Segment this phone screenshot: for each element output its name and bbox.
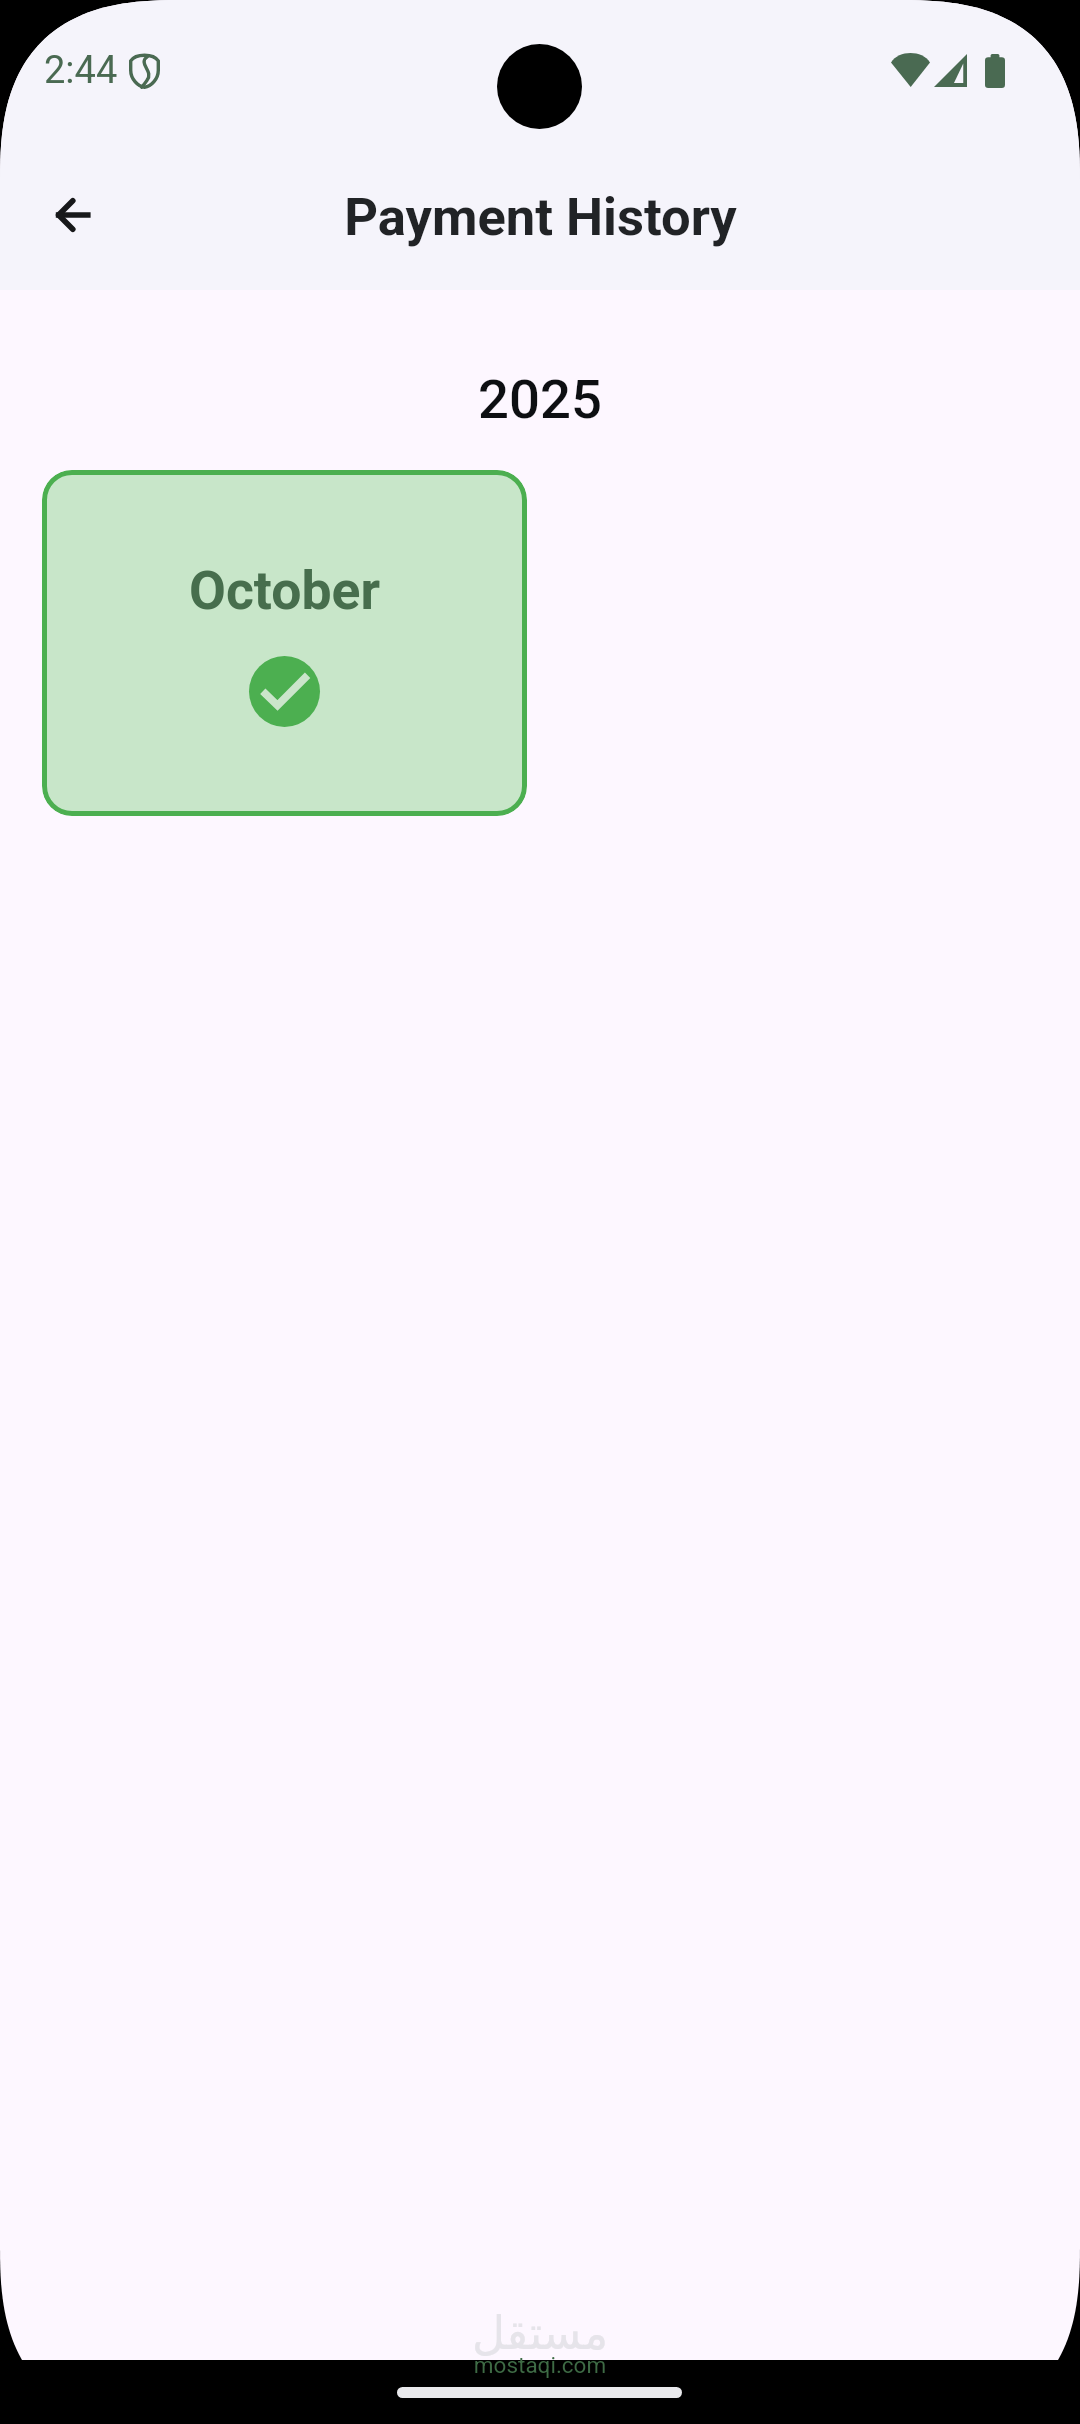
staticText: October <box>42 559 527 622</box>
staticText: 2025 <box>0 367 1080 431</box>
staticText: 2:44 <box>44 48 118 93</box>
staticText: مستقل <box>0 2307 1080 2360</box>
staticText: mostaqi.com <box>0 2352 1080 2378</box>
button[interactable]: Back <box>31 173 115 257</box>
button[interactable]: October <box>42 470 527 816</box>
staticText: Payment History <box>344 186 737 248</box>
